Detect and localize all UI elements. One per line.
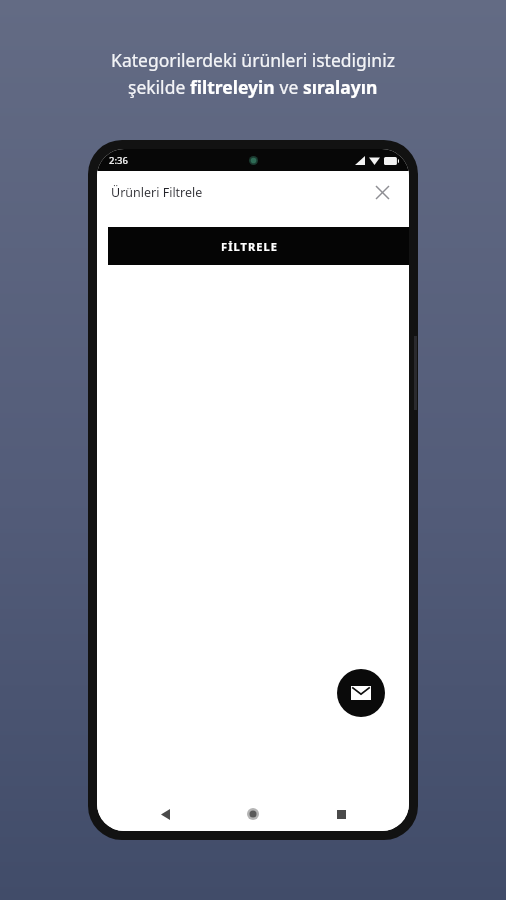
staticText: FİLTRELE <box>221 239 279 254</box>
button[interactable]: FİLTRELE <box>108 227 409 265</box>
button[interactable]: Son uygulamalar <box>321 797 361 831</box>
staticText: Ürünleri Filtrele <box>111 184 203 201</box>
staticText: filtreleyin <box>190 75 275 99</box>
staticText: sıralayın <box>303 75 378 99</box>
staticText: Kategorilerdeki ürünleri istediginiz <box>111 48 395 72</box>
button[interactable]: Ana ekran <box>233 797 273 831</box>
button[interactable]: Kapat <box>369 179 395 205</box>
staticText: şekilde <box>128 75 190 99</box>
staticText: 2:36 <box>109 154 128 167</box>
button[interactable]: Geri <box>145 797 185 831</box>
button[interactable]: Mesaj gönder <box>337 669 385 717</box>
staticText: ve <box>275 75 303 99</box>
